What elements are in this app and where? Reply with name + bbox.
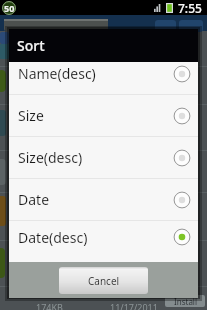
button[interactable]: Name(desc) bbox=[9, 62, 198, 94]
staticText: Date bbox=[18, 190, 173, 209]
staticText: Name(desc) bbox=[18, 64, 173, 83]
button[interactable]: Size bbox=[9, 95, 198, 136]
staticText: 50 bbox=[4, 2, 15, 14]
button[interactable]: Date bbox=[9, 179, 198, 220]
button[interactable]: Date(desc) bbox=[9, 221, 198, 253]
staticText: Date(desc) bbox=[18, 228, 173, 247]
staticText: 7:55 bbox=[178, 0, 202, 15]
staticText: Size bbox=[18, 106, 173, 125]
staticText: Cancel bbox=[88, 274, 120, 288]
button[interactable]: Size(desc) bbox=[9, 137, 198, 178]
staticText: Install bbox=[174, 296, 197, 307]
staticText: 174KB bbox=[36, 301, 63, 310]
staticText: 11/17/2011 bbox=[110, 301, 158, 310]
staticText: Sort bbox=[17, 36, 45, 55]
staticText: Size(desc) bbox=[18, 148, 173, 167]
button[interactable]: Cancel bbox=[59, 267, 148, 294]
